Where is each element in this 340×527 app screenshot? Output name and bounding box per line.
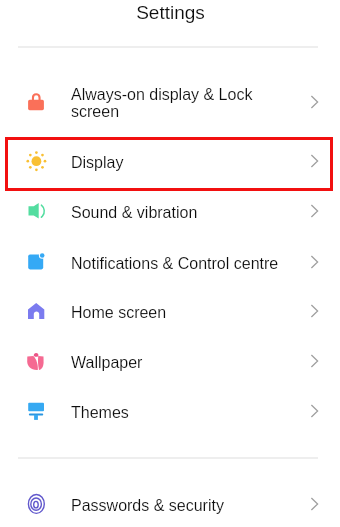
staticText: Wallpaper	[71, 354, 143, 372]
staticText: Passwords & security	[71, 497, 224, 515]
button[interactable]: Notifications & Control centre	[0, 237, 340, 287]
staticText: Always-on display & Lock screen	[71, 86, 253, 121]
staticText: Display	[71, 154, 124, 172]
button[interactable]: Home screen	[0, 286, 340, 336]
button[interactable]: Always-on display & Lock screen	[0, 77, 340, 135]
staticText: Settings	[136, 2, 205, 23]
button[interactable]: Passwords & security	[0, 479, 340, 527]
staticText: Sound & vibration	[71, 204, 198, 222]
staticText: Notifications & Control centre	[71, 255, 279, 273]
button[interactable]: Themes	[0, 386, 340, 436]
button[interactable]: Display	[0, 136, 340, 186]
button[interactable]: Sound & vibration	[0, 186, 340, 236]
staticText: Themes	[71, 404, 129, 422]
button[interactable]: Wallpaper	[0, 336, 340, 386]
staticText: Home screen	[71, 304, 167, 322]
